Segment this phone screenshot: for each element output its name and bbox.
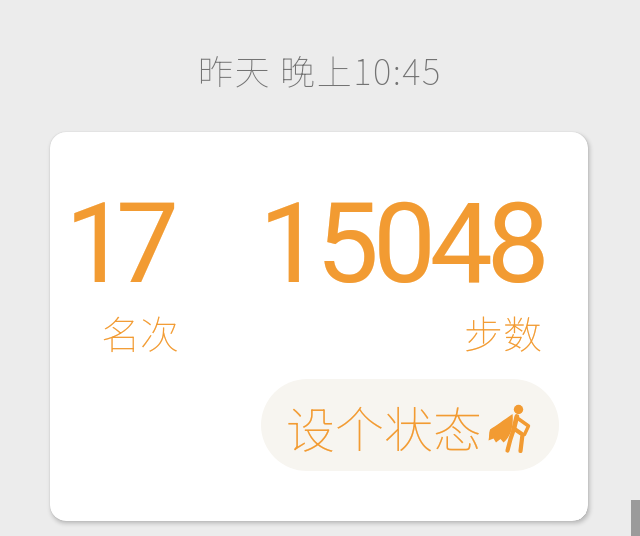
button[interactable]: 设个状态 — [261, 379, 559, 471]
button[interactable]: 17 — [50, 132, 588, 521]
staticText: 昨天 晚上10:45 — [198, 44, 442, 95]
staticText: 名次 — [101, 304, 180, 360]
staticText: 15048 — [259, 178, 544, 309]
staticText: 17 — [65, 178, 167, 309]
staticText: 步数 — [464, 304, 543, 360]
staticText: 设个状态 — [286, 391, 483, 462]
